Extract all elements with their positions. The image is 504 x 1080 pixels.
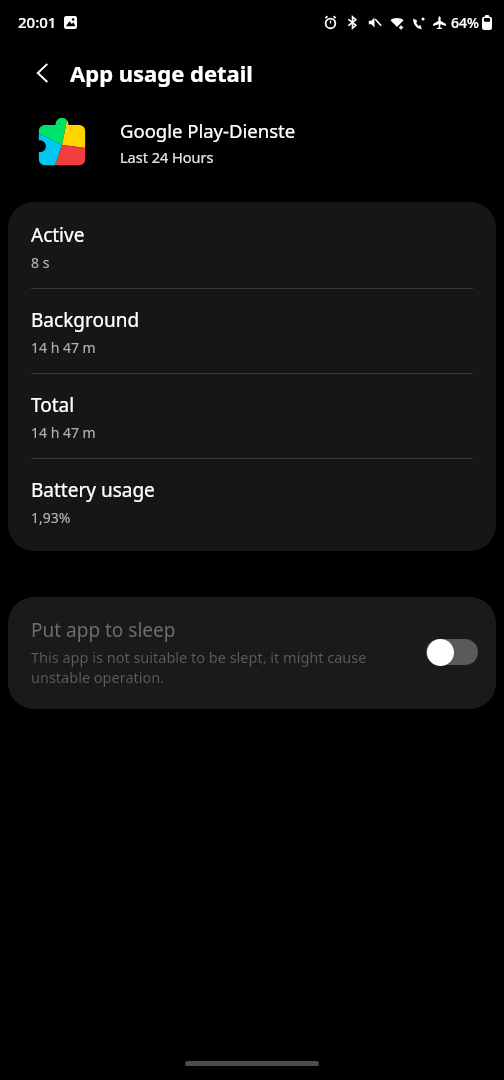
- button[interactable]: Total: [8, 374, 496, 458]
- button[interactable]: Battery usage: [8, 459, 496, 551]
- staticText: 20:01: [18, 12, 57, 32]
- staticText: 64%: [451, 13, 479, 32]
- staticText: 1,93%: [31, 508, 71, 527]
- staticText: Last 24 Hours: [120, 147, 214, 167]
- staticText: Active: [31, 222, 85, 248]
- button[interactable]: Back: [20, 50, 66, 96]
- button[interactable]: Put app to sleep: [8, 597, 496, 709]
- staticText: 14 h 47 m: [31, 423, 96, 442]
- staticText: Battery usage: [31, 477, 155, 503]
- staticText: 8 s: [31, 253, 50, 272]
- staticText: This app is not suitable to be slept, it…: [31, 647, 416, 687]
- button[interactable]: Background: [8, 289, 496, 373]
- staticText: App usage detail: [70, 58, 253, 88]
- button[interactable]: Put app to sleep toggle: [426, 637, 478, 667]
- button[interactable]: Active: [8, 202, 496, 288]
- staticText: Put app to sleep: [31, 617, 176, 643]
- staticText: Total: [31, 392, 75, 418]
- staticText: Google Play-Dienste: [120, 118, 296, 143]
- staticText: 14 h 47 m: [31, 338, 96, 357]
- staticText: Background: [31, 307, 140, 333]
